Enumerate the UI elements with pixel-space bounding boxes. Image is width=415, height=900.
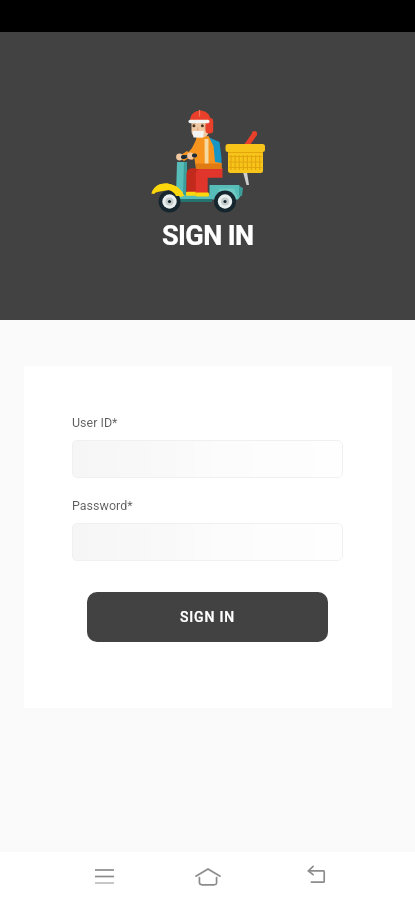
staticText: SIGN IN [162, 220, 254, 252]
button[interactable]: Back [294, 854, 339, 899]
button[interactable] [72, 440, 343, 478]
button[interactable]: SIGN IN [87, 592, 328, 642]
button[interactable]: Home [185, 854, 230, 899]
button[interactable]: Recents [82, 854, 127, 899]
button[interactable] [72, 523, 343, 561]
staticText: User ID* [72, 415, 118, 430]
staticText: Password* [72, 498, 133, 513]
staticText: SIGN IN [180, 609, 235, 625]
